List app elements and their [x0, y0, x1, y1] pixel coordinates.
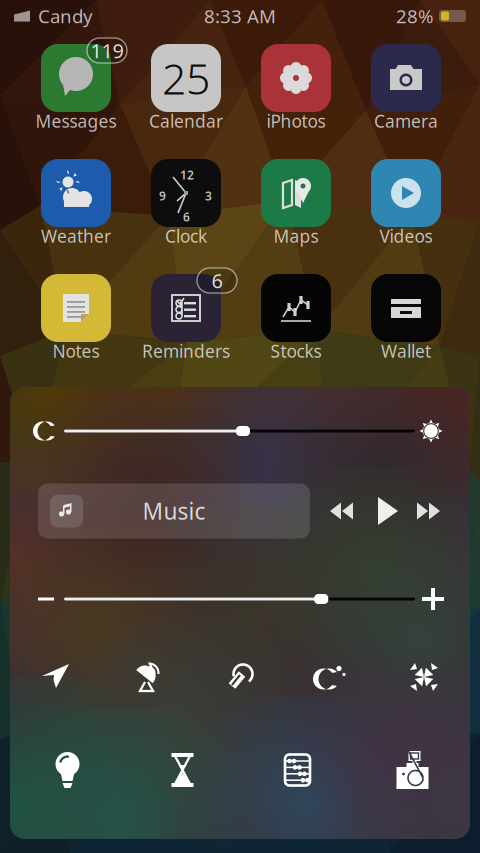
button[interactable]: iPhotos — [241, 38, 351, 130]
button[interactable]: Weather — [21, 153, 131, 245]
button[interactable]: Bluetooth — [194, 652, 286, 702]
staticText: 9 — [159, 188, 166, 204]
button[interactable]: Do Not Disturb — [286, 652, 378, 702]
staticText: 6 — [211, 267, 222, 294]
staticText: Notes — [52, 339, 99, 362]
button[interactable]: Calculator — [240, 742, 355, 798]
staticText: Wallet — [381, 339, 431, 362]
button[interactable]: Notes — [21, 268, 131, 360]
staticText: Stocks — [270, 339, 321, 362]
staticText: Reminders — [142, 339, 230, 362]
button[interactable]: Timer — [125, 742, 240, 798]
staticText: Clock — [165, 224, 207, 247]
staticText: Camera — [374, 109, 438, 132]
button[interactable]: Airplane Mode — [10, 652, 102, 702]
button[interactable]: Flashlight — [10, 742, 125, 798]
button[interactable]: Previous — [321, 492, 363, 530]
staticText: 12 — [180, 167, 194, 183]
staticText: Messages — [35, 109, 116, 132]
button[interactable]: Rotation Lock — [378, 652, 470, 702]
button[interactable]: Camera — [355, 742, 470, 798]
staticText: Weather — [41, 224, 111, 247]
button[interactable]: 119 — [21, 38, 131, 130]
staticText: Calendar — [149, 109, 223, 132]
button[interactable]: Wi-Fi — [102, 652, 194, 702]
staticText: 25 — [162, 50, 210, 106]
staticText: 3 — [205, 188, 212, 204]
staticText: Candy — [38, 4, 93, 28]
staticText: 119 — [90, 37, 123, 64]
staticText: 28% — [396, 4, 434, 28]
button[interactable]: 12 — [131, 153, 241, 245]
button[interactable] — [10, 403, 470, 459]
staticText: Videos — [379, 224, 432, 247]
button[interactable]: Music — [38, 483, 310, 538]
staticText: Maps — [273, 224, 318, 247]
staticText: iPhotos — [266, 109, 325, 132]
button[interactable]: Camera — [351, 38, 461, 130]
staticText: 6 — [183, 209, 190, 225]
button[interactable]: Wallet — [351, 268, 461, 360]
button[interactable]: 25 — [131, 38, 241, 130]
staticText: 8:33 AM — [204, 4, 276, 28]
button[interactable]: Videos — [351, 153, 461, 245]
button[interactable]: 6 — [131, 268, 241, 360]
button[interactable]: Maps — [241, 153, 351, 245]
button[interactable] — [10, 577, 470, 621]
staticText: Music — [142, 496, 205, 526]
button[interactable]: Play — [367, 492, 409, 530]
button[interactable]: Next — [408, 492, 450, 530]
button[interactable]: Stocks — [241, 268, 351, 360]
